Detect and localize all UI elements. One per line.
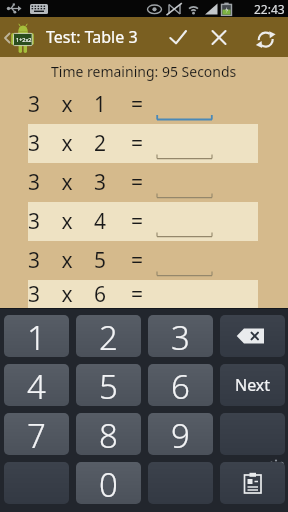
button[interactable]: Next (220, 364, 285, 406)
staticText: 0 (99, 462, 118, 504)
staticText: = (125, 168, 149, 197)
button[interactable]: 8 (76, 413, 141, 455)
button[interactable] (156, 124, 213, 163)
button[interactable]: 0 (76, 462, 141, 504)
staticText: 7 (27, 413, 46, 455)
staticText: 3 (22, 246, 46, 275)
staticText: x (55, 90, 79, 119)
button[interactable] (202, 17, 245, 57)
staticText: 4 (27, 364, 46, 406)
staticText: = (125, 207, 149, 236)
button[interactable] (156, 241, 213, 280)
staticText: 5 (99, 364, 118, 406)
button[interactable]: 3 (148, 315, 213, 357)
button[interactable] (245, 17, 288, 57)
staticText: Time remaining: 95 Seconds (51, 62, 237, 81)
staticText: Next (235, 374, 271, 396)
staticText: = (125, 246, 149, 275)
staticText: x (55, 168, 79, 197)
staticText: 3 (22, 168, 46, 197)
button[interactable] (156, 85, 213, 124)
staticText: = (125, 280, 149, 308)
staticText: 3 (22, 280, 46, 308)
staticText: 3 (171, 315, 190, 357)
button[interactable] (156, 163, 213, 202)
staticText: 6 (171, 364, 190, 406)
button[interactable] (4, 462, 69, 504)
staticText: x (55, 129, 79, 158)
button[interactable]: 2 (76, 315, 141, 357)
staticText: x (55, 280, 79, 308)
staticText: x (55, 246, 79, 275)
staticText: 9 (171, 413, 190, 455)
button[interactable] (220, 315, 285, 357)
staticText: 8 (99, 413, 118, 455)
staticText: = (125, 129, 149, 158)
button[interactable] (156, 202, 213, 241)
staticText: 5 (88, 246, 112, 275)
staticText: 2 (99, 315, 118, 357)
staticText: 3 (22, 90, 46, 119)
button[interactable] (220, 413, 285, 455)
button[interactable]: 1 (4, 315, 69, 357)
button[interactable]: 9 (148, 413, 213, 455)
staticText: 1+2x2 (16, 36, 32, 43)
button[interactable]: 5 (76, 364, 141, 406)
staticText: 4 (88, 207, 112, 236)
button[interactable]: 6 (148, 364, 213, 406)
staticText: 6 (88, 280, 112, 308)
staticText: 3 (22, 129, 46, 158)
staticText: = (125, 90, 149, 119)
staticText: 3 (22, 207, 46, 236)
button[interactable]: 4 (4, 364, 69, 406)
staticText: x (55, 207, 79, 236)
staticText: 1 (88, 90, 112, 119)
button[interactable]: 7 (4, 413, 69, 455)
button[interactable]: 1+2x2 (0, 17, 46, 57)
staticText: 22:43 (254, 1, 285, 17)
button[interactable] (159, 17, 202, 57)
staticText: 3 (88, 168, 112, 197)
button[interactable] (148, 462, 213, 504)
staticText: Test: Table 3 (46, 26, 138, 48)
button[interactable] (220, 462, 285, 504)
staticText: 2 (88, 129, 112, 158)
staticText: 1 (27, 315, 46, 357)
